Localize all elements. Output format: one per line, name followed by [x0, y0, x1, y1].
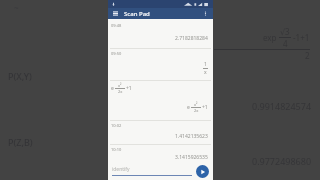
staticText: e [187, 104, 190, 111]
button[interactable]: 1.4142135623 [108, 128, 213, 144]
staticText: exp [263, 32, 277, 43]
staticText: 10:10 [111, 147, 122, 152]
staticText: P(Z,B) [8, 136, 33, 148]
staticText: +1 [126, 85, 132, 92]
button[interactable]: e [108, 94, 213, 120]
staticText: 2.7182818284 [175, 35, 208, 42]
staticText: 2x [194, 108, 199, 113]
staticText: +1 [202, 104, 208, 111]
staticText: 09:50 [111, 51, 122, 56]
staticText: Scan Pad [124, 10, 150, 18]
staticText: x² [118, 83, 122, 88]
staticText: 09:48 [111, 23, 122, 28]
staticText: x [204, 69, 207, 76]
button[interactable]: identify [112, 166, 196, 176]
staticText: 1 [204, 61, 207, 68]
staticText: √3 [280, 26, 290, 37]
staticText: 10:02 [111, 123, 122, 128]
staticText: P(X,Y) [8, 70, 32, 82]
staticText: 2 [305, 50, 310, 61]
button[interactable]: Send [196, 165, 209, 178]
staticText: 0.9914824574 [252, 100, 312, 112]
staticText: 1.4142135623 [175, 133, 208, 140]
staticText: identify [112, 166, 130, 173]
staticText: 3.1415926535 [175, 154, 208, 161]
button[interactable]: More options [201, 9, 210, 18]
staticText: 4 [283, 38, 288, 49]
button[interactable]: Open navigation menu [111, 9, 120, 18]
button[interactable]: 1 [108, 56, 213, 80]
staticText: e [111, 85, 114, 92]
staticText: 0.9772498680 [252, 155, 312, 167]
button[interactable]: 3.1415926535 [108, 152, 213, 162]
staticText: 2x [118, 89, 123, 94]
button[interactable]: 2.7182818284 [108, 28, 213, 48]
staticText: x² [194, 102, 198, 107]
